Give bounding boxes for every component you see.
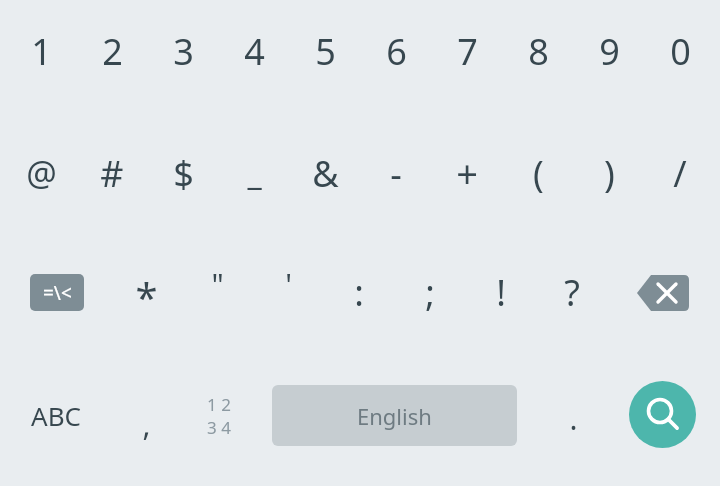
button[interactable]: 5 [289,15,361,87]
button[interactable]: Backspace [637,275,689,311]
button[interactable]: ' [252,248,324,320]
button[interactable]: ( [502,137,574,209]
staticText: + [456,147,478,199]
staticText: _ [247,151,262,195]
staticText: 3 [173,27,194,76]
staticText: " [211,264,224,305]
staticText: 8 [528,27,549,76]
button[interactable]: $ [147,137,219,209]
staticText: 4 [244,27,265,76]
staticText: 9 [599,27,620,76]
staticText: 0 [670,27,691,76]
staticText: English [357,401,432,431]
button[interactable]: 7 [431,15,503,87]
staticText: - [390,149,402,198]
button[interactable]: : [323,256,395,328]
button[interactable]: & [289,137,361,209]
staticText: 1 2 [207,393,231,416]
button[interactable]: ABC [8,382,104,448]
staticText: ! [496,268,506,317]
staticText: =\< [43,280,72,306]
button[interactable]: 8 [502,15,574,87]
button[interactable]: + [431,137,503,209]
staticText: # [100,149,124,198]
staticText: : [354,268,364,317]
button[interactable]: =\< [30,274,84,311]
staticText: & [312,149,339,198]
staticText: 5 [315,27,336,76]
staticText: 1 [31,27,52,76]
button[interactable]: ? [536,256,608,328]
button[interactable]: _ [218,137,290,209]
button[interactable]: 9 [573,15,645,87]
button[interactable]: 3 [147,15,219,87]
button[interactable]: # [76,137,148,209]
staticText: 2 [102,27,123,76]
button[interactable]: , [111,391,181,457]
staticText: $ [173,149,194,198]
button[interactable]: English [272,385,517,446]
staticText: ; [425,268,435,317]
button[interactable]: " [181,248,253,320]
staticText: @ [26,150,57,196]
staticText: ? [564,268,580,317]
button[interactable]: - [360,137,432,209]
staticText: , [142,404,151,445]
staticText: ( [533,149,544,198]
staticText: 7 [457,27,478,76]
button[interactable]: Numeric keypad [188,385,250,447]
staticText: ' [285,264,292,305]
staticText: 3 4 [207,416,231,439]
button[interactable]: Search [629,381,696,448]
staticText: / [673,149,687,198]
staticText: . [569,398,578,439]
button[interactable]: . [538,385,608,451]
button[interactable]: / [644,137,716,209]
button[interactable]: 2 [76,15,148,87]
button[interactable]: ! [465,256,537,328]
staticText: * [135,269,158,323]
button[interactable]: 0 [644,15,716,87]
button[interactable]: 4 [218,15,290,87]
button[interactable]: * [110,260,182,332]
button[interactable]: @ [5,137,77,209]
staticText: ABC [31,398,81,433]
button[interactable]: ; [394,256,466,328]
staticText: ) [604,149,615,198]
button[interactable]: 1 [5,15,77,87]
staticText: 6 [386,27,407,76]
button[interactable]: 6 [360,15,432,87]
button[interactable]: ) [573,137,645,209]
